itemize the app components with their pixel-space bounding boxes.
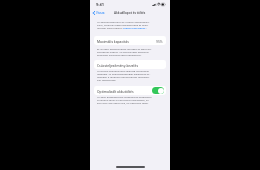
staticText: sáról, amellyel meghosszabbíthatja az ak… (97, 23, 149, 26)
staticText: Az iPhone akkumulátora jelenleg normális… (97, 69, 150, 72)
staticText: Maximális kapacitás (97, 39, 129, 43)
button[interactable]: Maximális kapacitás (94, 36, 166, 45)
staticText: Az akku öregedésének csökkentése érdekéb… (97, 95, 152, 98)
staticText: dekében a rendszer teljesítményét dinami… (97, 75, 150, 78)
button[interactable]: Vissza (92, 10, 106, 16)
staticText: san szabályozza. (97, 78, 117, 81)
button[interactable]: Csúcsteljesítmény-kezelés (94, 60, 166, 69)
staticText: Csúcsteljesítmény-kezelés (97, 63, 138, 67)
button[interactable]: Optimalizált akkutöltés kapcsoló (152, 87, 164, 94)
button[interactable]: Optimalizált akkutöltés (94, 86, 166, 95)
staticText: Vissza (96, 11, 105, 15)
staticText: 9:41 (96, 2, 104, 7)
staticText: Optimalizált akkutöltés (97, 89, 134, 93)
staticText: Ez az akku kapacitásának mértéke az újko… (97, 47, 152, 50)
staticText: 95% (156, 39, 163, 43)
staticText: mulátor élettartamát: Tudjon meg többet… (97, 26, 148, 29)
staticText: Akkuállapot és töltés (114, 11, 146, 15)
staticText: működik. Az energiaszükséglet kielégítés… (97, 72, 151, 75)
button[interactable]: Tudjon meg többet (123, 27, 147, 31)
staticText: Az akkumulátorokról és a töltés optimali… (97, 20, 150, 23)
staticText: az iPhone tanul a napi töltési szokásaib… (97, 98, 149, 101)
staticText: 80% fölé csak akkor tölti, ha használni … (97, 101, 149, 104)
staticText: pacitáshoz képest. Az alacsonyabb kapaci… (97, 50, 149, 53)
staticText: kevesebb használati időt eredményez. (97, 53, 142, 56)
